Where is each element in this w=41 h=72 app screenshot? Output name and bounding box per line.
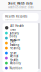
staticText: Nutrition: [10, 66, 23, 70]
staticText: Share Watch data: [8, 2, 33, 5]
staticText: Data from your devices: [5, 19, 21, 21]
staticText: Mobility: [10, 61, 21, 65]
staticText: Activity: [10, 31, 19, 35]
staticText: Heart: [10, 51, 17, 55]
staticText: All Health Data: [10, 24, 24, 31]
staticText: Hearing: [10, 46, 21, 50]
staticText: Health Records: [5, 15, 27, 18]
staticText: Mental Health: [10, 55, 19, 62]
staticText: Body Measure: [10, 35, 21, 42]
staticText: watchOS device data: [8, 5, 33, 9]
staticText: Cycle Tracking: [10, 40, 20, 47]
